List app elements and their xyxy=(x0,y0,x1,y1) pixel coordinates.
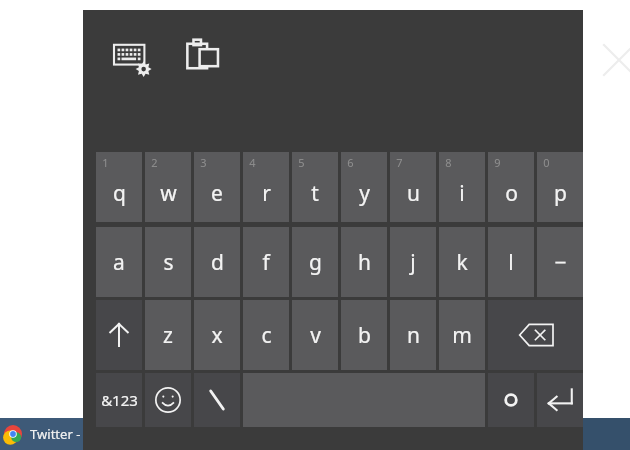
staticText: &123 xyxy=(101,390,138,410)
staticText: 5 xyxy=(298,155,305,170)
button[interactable]: Enter xyxy=(537,373,583,427)
staticText: 9 xyxy=(494,155,501,170)
staticText: p xyxy=(554,179,567,208)
button[interactable]: d xyxy=(194,227,240,297)
staticText: 1 xyxy=(102,155,109,170)
button[interactable]: b xyxy=(341,300,387,370)
button[interactable]: 8 xyxy=(439,152,485,222)
staticText: x xyxy=(211,321,223,350)
staticText: w xyxy=(160,179,177,208)
staticText: l xyxy=(508,248,514,277)
staticText: 4 xyxy=(249,155,256,170)
staticText: g xyxy=(309,248,322,277)
button[interactable]: j xyxy=(390,227,436,297)
button[interactable] xyxy=(488,373,534,427)
button[interactable]: Close xyxy=(591,32,630,88)
button[interactable]: − xyxy=(537,227,583,297)
button[interactable]: Backspace xyxy=(488,300,583,370)
staticText: e xyxy=(211,179,223,208)
staticText: m xyxy=(452,321,472,350)
staticText: a xyxy=(113,248,125,277)
staticText: n xyxy=(407,321,420,350)
button[interactable]: z xyxy=(145,300,191,370)
staticText: t xyxy=(311,179,319,208)
staticText: v xyxy=(310,321,321,350)
staticText: b xyxy=(358,321,371,350)
staticText: c xyxy=(261,321,272,350)
button[interactable] xyxy=(194,373,240,427)
staticText: r xyxy=(262,179,271,208)
staticText: 7 xyxy=(396,155,403,170)
staticText: 2 xyxy=(151,155,158,170)
staticText: f xyxy=(262,248,270,277)
button[interactable]: Shift xyxy=(96,300,142,370)
button[interactable]: 7 xyxy=(390,152,436,222)
staticText: 6 xyxy=(347,155,354,170)
staticText: Twitter - Goog xyxy=(30,425,117,443)
button[interactable]: a xyxy=(96,227,142,297)
button[interactable]: s xyxy=(145,227,191,297)
button[interactable]: 9 xyxy=(488,152,534,222)
staticText: i xyxy=(459,179,465,208)
staticText: d xyxy=(211,248,224,277)
button[interactable]: c xyxy=(243,300,289,370)
button[interactable]: 1 xyxy=(96,152,142,222)
button[interactable]: l xyxy=(488,227,534,297)
button[interactable]: 4 xyxy=(243,152,289,222)
button[interactable]: Twitter - Goog xyxy=(0,418,250,450)
staticText: 3 xyxy=(200,155,207,170)
staticText: q xyxy=(113,179,126,208)
button[interactable]: 3 xyxy=(194,152,240,222)
button[interactable]: f xyxy=(243,227,289,297)
button[interactable]: 5 xyxy=(292,152,338,222)
button[interactable]: &123 xyxy=(96,373,142,427)
button[interactable]: 0 xyxy=(537,152,583,222)
button[interactable]: n xyxy=(390,300,436,370)
button[interactable]: Emoji xyxy=(145,373,191,427)
staticText: h xyxy=(358,248,371,277)
button[interactable]: 6 xyxy=(341,152,387,222)
staticText: u xyxy=(407,179,420,208)
button[interactable]: m xyxy=(439,300,485,370)
button[interactable]: v xyxy=(292,300,338,370)
staticText: − xyxy=(554,248,567,277)
staticText: z xyxy=(163,321,173,350)
button[interactable]: h xyxy=(341,227,387,297)
staticText: j xyxy=(410,248,416,277)
button[interactable]: k xyxy=(439,227,485,297)
button[interactable]: Clipboard xyxy=(179,32,227,80)
staticText: s xyxy=(163,248,174,277)
staticText: o xyxy=(505,179,518,208)
staticText: y xyxy=(359,179,370,208)
button[interactable]: x xyxy=(194,300,240,370)
staticText: 0 xyxy=(543,155,550,170)
staticText: k xyxy=(456,248,468,277)
button[interactable]: Keyboard settings xyxy=(109,36,157,84)
staticText: 8 xyxy=(445,155,452,170)
button[interactable]: 2 xyxy=(145,152,191,222)
button[interactable]: g xyxy=(292,227,338,297)
